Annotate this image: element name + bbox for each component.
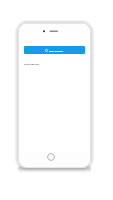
staticText: Scan Device [49,49,63,52]
button[interactable]: Home [47,153,55,161]
staticText: Scan Results [24,62,39,65]
button[interactable]: Scan Device [24,46,85,54]
